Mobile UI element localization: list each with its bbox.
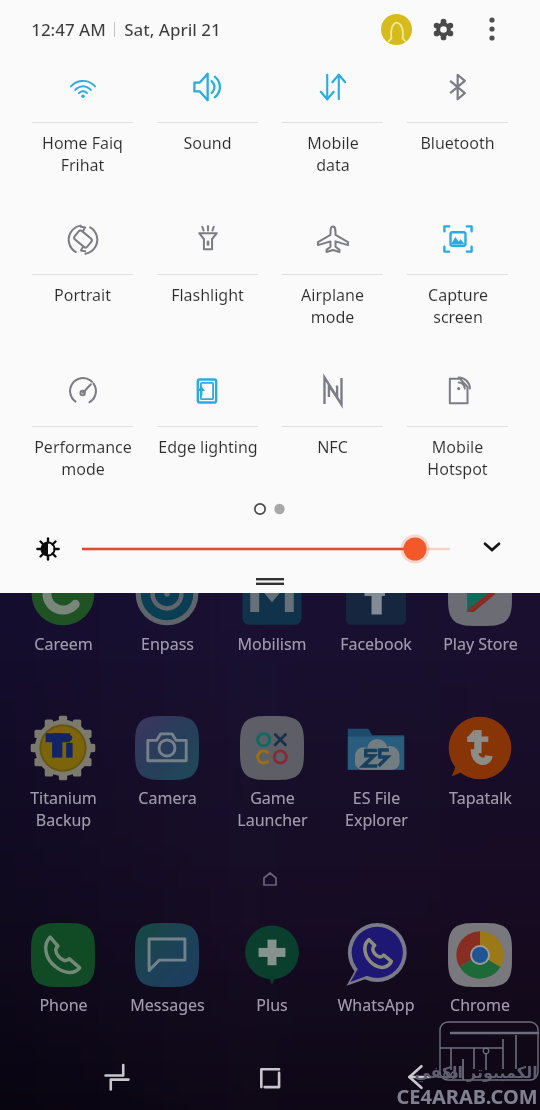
staticText: Flashlight bbox=[171, 284, 244, 306]
button[interactable]: Account bbox=[381, 14, 412, 45]
button[interactable]: More options bbox=[477, 14, 507, 44]
staticText: Bluetooth bbox=[420, 132, 495, 154]
staticText: Careem bbox=[34, 633, 93, 655]
staticText: Edge lighting bbox=[158, 436, 258, 458]
button[interactable]: Portrait bbox=[20, 210, 145, 306]
staticText: Plus bbox=[256, 994, 288, 1016]
staticText: Tapatalk bbox=[449, 787, 512, 809]
staticText: Capture screen bbox=[428, 284, 488, 328]
staticText: Sound bbox=[183, 132, 232, 154]
staticText: Mobilism bbox=[237, 633, 307, 655]
button[interactable]: Capture screen bbox=[395, 210, 520, 328]
button[interactable]: Settings bbox=[427, 13, 459, 45]
button[interactable]: WhatsApp bbox=[326, 923, 426, 1016]
button[interactable]: Mobile Hotspot bbox=[395, 362, 520, 480]
staticText: Game Launcher bbox=[237, 787, 308, 831]
staticText: Messages bbox=[130, 994, 205, 1016]
button[interactable]: Back bbox=[396, 1053, 444, 1101]
button[interactable]: Messages bbox=[117, 923, 217, 1016]
button[interactable]: Home bbox=[245, 1053, 293, 1101]
staticText: Facebook bbox=[340, 633, 412, 655]
staticText: Portrait bbox=[54, 284, 111, 306]
staticText: Home Faiq Frihat bbox=[42, 132, 123, 176]
staticText: NFC bbox=[317, 436, 348, 458]
button[interactable]: Titanium Backup bbox=[13, 716, 113, 831]
staticText: Phone bbox=[39, 994, 88, 1016]
staticText: WhatsApp bbox=[337, 994, 415, 1016]
button[interactable]: Enpass bbox=[117, 562, 217, 655]
button[interactable]: Expand brightness settings bbox=[473, 527, 511, 565]
staticText: Enpass bbox=[141, 633, 194, 655]
button[interactable]: Mobile data bbox=[270, 58, 395, 176]
button[interactable]: Airplane mode bbox=[270, 210, 395, 328]
staticText: Play Store bbox=[443, 633, 518, 655]
button[interactable]: Edge lighting bbox=[145, 362, 270, 458]
staticText: الكمبيوتر الكفي bbox=[414, 1061, 538, 1083]
button[interactable]: Tapatalk bbox=[430, 716, 530, 809]
staticText: Titanium Backup bbox=[30, 787, 97, 831]
button[interactable]: Mobilism bbox=[222, 562, 322, 655]
staticText: CE4ARAB.COM bbox=[396, 1083, 538, 1110]
button[interactable]: Game Launcher bbox=[222, 716, 322, 831]
button[interactable]: Performance mode bbox=[20, 362, 145, 480]
button[interactable]: NFC bbox=[270, 362, 395, 458]
button[interactable]: Flashlight bbox=[145, 210, 270, 306]
button[interactable]: Chrome bbox=[430, 923, 530, 1016]
staticText: Chrome bbox=[450, 994, 510, 1016]
button[interactable]: Recents bbox=[93, 1053, 141, 1101]
button[interactable]: ES File Explorer bbox=[326, 716, 426, 831]
button[interactable]: Phone bbox=[13, 923, 113, 1016]
button[interactable]: Camera bbox=[117, 716, 217, 809]
staticText: Mobile data bbox=[307, 132, 359, 176]
staticText: Camera bbox=[138, 787, 197, 809]
staticText: 12:47 AM bbox=[31, 18, 106, 41]
staticText: ES File Explorer bbox=[345, 787, 408, 831]
staticText: Performance mode bbox=[34, 436, 132, 480]
button[interactable]: Home Faiq Frihat bbox=[20, 58, 145, 176]
button[interactable]: Bluetooth bbox=[395, 58, 520, 154]
staticText: Sat, April 21 bbox=[124, 18, 221, 41]
button[interactable]: Sound bbox=[145, 58, 270, 154]
button[interactable]: Facebook bbox=[326, 562, 426, 655]
staticText: Mobile Hotspot bbox=[427, 436, 488, 480]
staticText: Airplane mode bbox=[301, 284, 364, 328]
button[interactable]: Plus bbox=[222, 923, 322, 1016]
button[interactable]: Careem bbox=[13, 562, 113, 655]
button[interactable]: Play Store bbox=[430, 562, 530, 655]
